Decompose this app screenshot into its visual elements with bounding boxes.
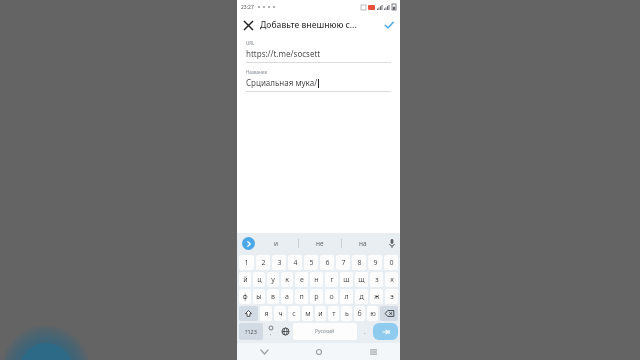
staticText: и xyxy=(318,309,323,319)
button[interactable]: и xyxy=(315,306,326,321)
staticText: м xyxy=(305,309,311,319)
staticText: ю xyxy=(370,309,376,319)
button[interactable]: Close xyxy=(237,14,259,36)
button[interactable]: 8 xyxy=(352,255,366,270)
button[interactable]: ф xyxy=(239,289,251,304)
button[interactable]: д xyxy=(355,289,368,304)
button[interactable]: на xyxy=(342,233,384,254)
staticText: б xyxy=(357,309,362,319)
staticText: https://t.me/socsett xyxy=(246,48,321,59)
staticText: ы xyxy=(256,292,262,302)
staticText: л xyxy=(344,292,349,302)
button[interactable]: ц xyxy=(253,272,265,287)
staticText: д xyxy=(359,292,364,302)
staticText: в xyxy=(271,292,275,302)
button[interactable]: ?123 xyxy=(239,323,263,340)
button[interactable]: 2 xyxy=(256,255,270,270)
button[interactable]: Recent apps xyxy=(360,343,386,360)
button[interactable]: а xyxy=(281,289,293,304)
button[interactable]: р xyxy=(310,289,323,304)
button[interactable]: ч xyxy=(274,306,286,321)
button[interactable]: н xyxy=(310,272,323,287)
staticText: ц xyxy=(257,275,262,285)
button[interactable]: у xyxy=(267,272,279,287)
button[interactable]: Shift xyxy=(239,306,258,321)
button[interactable]: Название xyxy=(246,69,391,92)
staticText: , xyxy=(270,330,272,337)
button[interactable]: Enter xyxy=(373,323,398,340)
button[interactable]: Emoji xyxy=(264,322,278,341)
button[interactable]: Home xyxy=(306,343,332,360)
staticText: Название xyxy=(246,69,268,75)
button[interactable]: к xyxy=(281,272,293,287)
button[interactable]: 9 xyxy=(368,255,382,270)
staticText: ф xyxy=(242,292,248,302)
staticText: 7 xyxy=(341,258,346,268)
staticText: ь xyxy=(345,309,349,319)
button[interactable]: Change language xyxy=(278,322,292,341)
button[interactable]: 6 xyxy=(320,255,334,270)
staticText: 9 xyxy=(373,258,378,268)
staticText: н xyxy=(314,275,319,285)
staticText: х xyxy=(390,275,394,285)
staticText: . xyxy=(364,328,366,336)
button[interactable]: б xyxy=(354,306,365,321)
staticText: г xyxy=(330,275,334,285)
staticText: о xyxy=(329,292,334,302)
button[interactable]: ы xyxy=(253,289,265,304)
button[interactable]: More suggestions xyxy=(242,237,255,250)
staticText: я xyxy=(264,309,269,319)
button[interactable]: о xyxy=(325,289,338,304)
staticText: й xyxy=(243,275,248,285)
button[interactable]: 0 xyxy=(384,255,398,270)
staticText: 3 xyxy=(277,258,282,268)
staticText: 2 xyxy=(261,258,266,268)
button[interactable]: м xyxy=(302,306,313,321)
staticText: ч xyxy=(278,309,283,319)
button[interactable]: п xyxy=(295,289,308,304)
button[interactable]: URL xyxy=(246,40,391,63)
staticText: ш xyxy=(343,275,350,285)
button[interactable]: ь xyxy=(341,306,352,321)
button[interactable]: л xyxy=(340,289,353,304)
button[interactable]: е xyxy=(295,272,308,287)
button[interactable]: э xyxy=(385,289,398,304)
button[interactable]: не xyxy=(299,233,341,254)
button[interactable]: ш xyxy=(340,272,353,287)
button[interactable]: й xyxy=(239,272,251,287)
staticText: р xyxy=(314,292,319,302)
button[interactable]: Русский xyxy=(293,323,357,340)
button[interactable]: 1 xyxy=(239,255,254,270)
button[interactable]: т xyxy=(328,306,339,321)
button[interactable]: в xyxy=(267,289,279,304)
button[interactable]: 3 xyxy=(272,255,286,270)
staticText: URL xyxy=(246,40,255,46)
button[interactable]: з xyxy=(370,272,383,287)
button[interactable]: 7 xyxy=(336,255,350,270)
staticText: щ xyxy=(358,275,365,285)
button[interactable]: ж xyxy=(370,289,383,304)
button[interactable]: Back xyxy=(251,343,277,360)
button[interactable]: ю xyxy=(367,306,378,321)
button[interactable]: 5 xyxy=(304,255,318,270)
staticText: 23:27 xyxy=(241,4,254,11)
button[interactable]: х xyxy=(385,272,398,287)
button[interactable]: я xyxy=(260,306,272,321)
button[interactable]: Save xyxy=(378,14,400,36)
staticText: п xyxy=(299,292,304,302)
staticText: 8 xyxy=(357,258,362,268)
button[interactable]: и xyxy=(255,233,298,254)
button[interactable]: Backspace xyxy=(380,306,398,321)
button[interactable]: с xyxy=(288,306,300,321)
button[interactable]: щ xyxy=(355,272,368,287)
staticText: Русский xyxy=(315,328,335,335)
staticText: ж xyxy=(374,292,380,302)
staticText: з xyxy=(375,275,379,285)
staticText: с xyxy=(292,309,296,319)
staticText: 1 xyxy=(244,258,249,268)
staticText: к xyxy=(285,275,289,285)
button[interactable]: г xyxy=(325,272,338,287)
button[interactable]: 4 xyxy=(288,255,302,270)
button[interactable]: Voice input xyxy=(384,233,400,254)
